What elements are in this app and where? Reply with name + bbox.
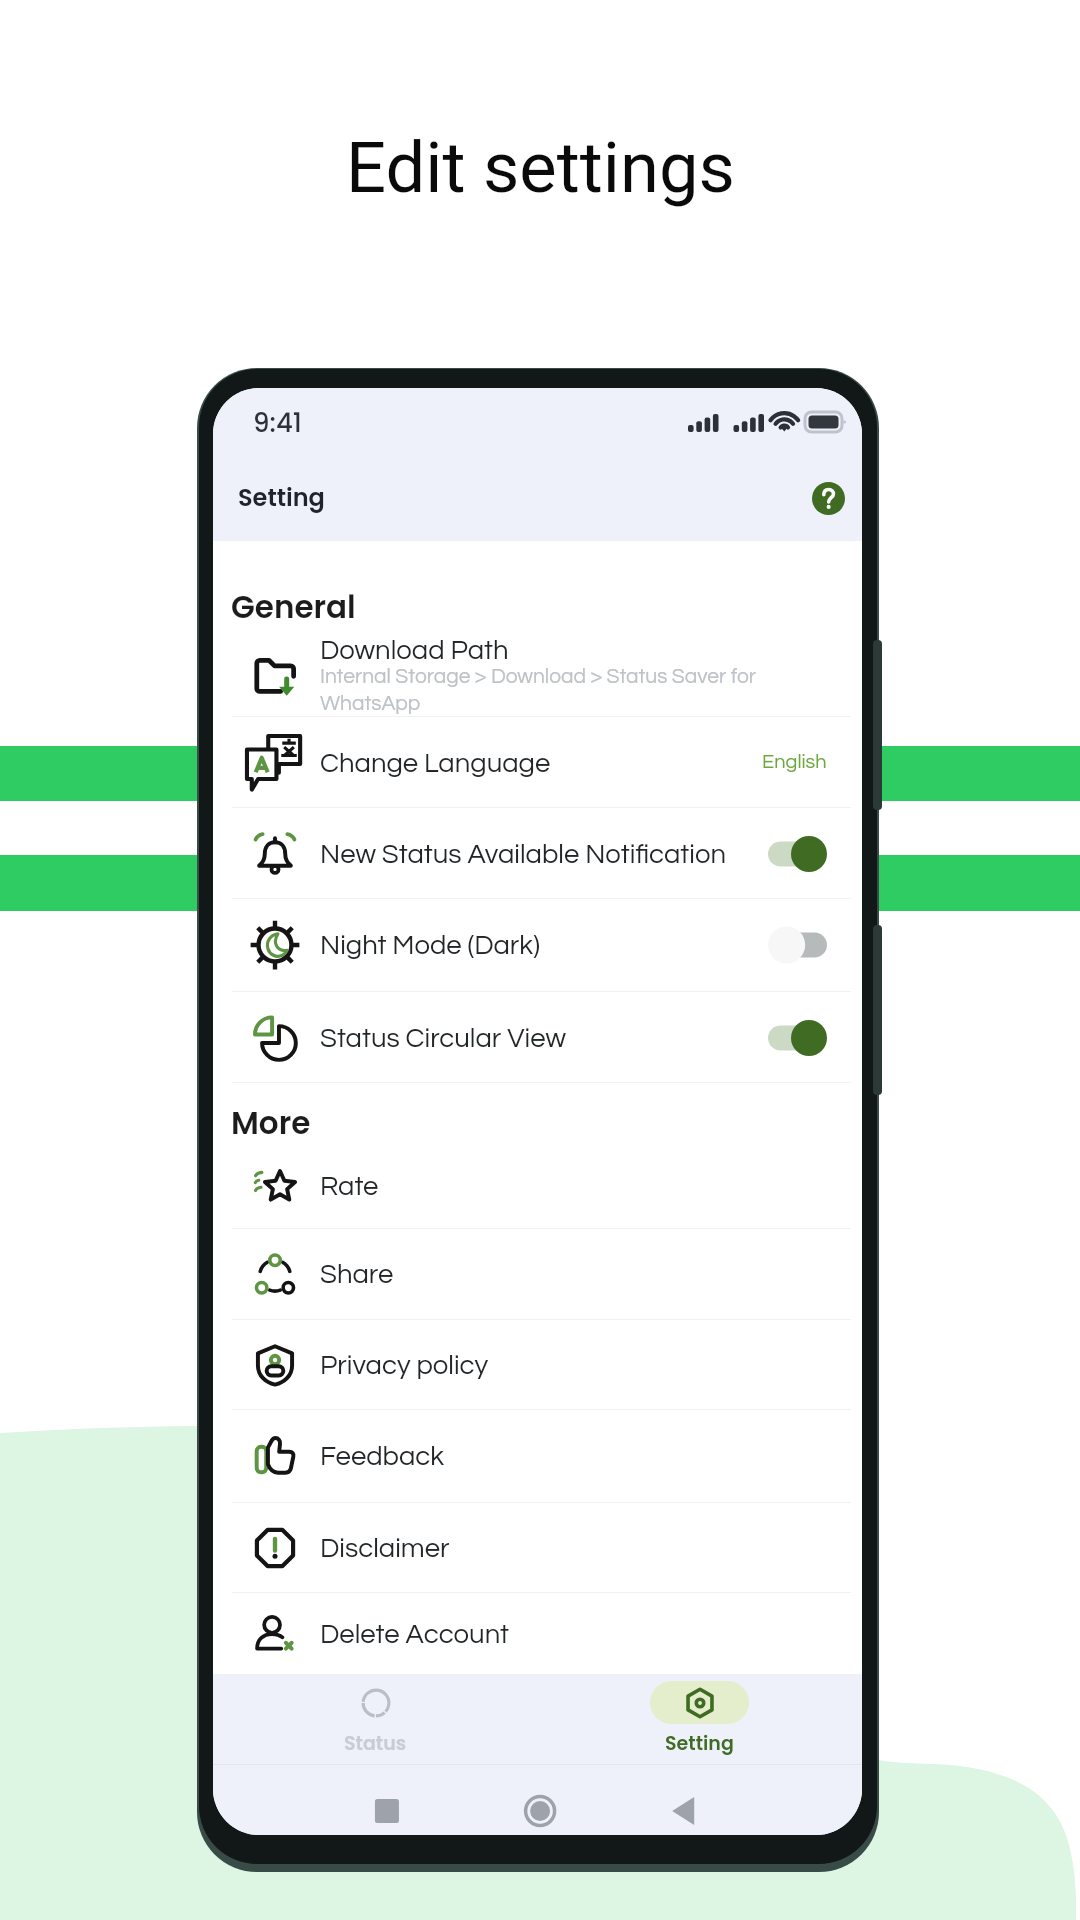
button[interactable]: Status [213, 1674, 537, 1764]
staticText: English [762, 752, 827, 773]
staticText: Edit settings [346, 127, 735, 210]
staticText: Feedback [320, 1442, 445, 1470]
staticText: Download Path [320, 636, 509, 664]
staticText: Change Language [320, 749, 551, 777]
button[interactable]: New Status Available Notification [213, 808, 862, 899]
staticText: Share [320, 1260, 394, 1288]
staticText: Status Circular View [320, 1024, 566, 1052]
staticText: Setting [665, 1730, 734, 1757]
staticText: Disclaimer [320, 1534, 450, 1562]
staticText: More [231, 1101, 311, 1144]
button[interactable]: Rate [213, 1143, 862, 1228]
button[interactable]: Night Mode (Dark) [213, 899, 862, 991]
button[interactable]: Download Path [213, 634, 862, 716]
button[interactable]: Help [812, 482, 845, 515]
button[interactable]: Privacy policy [213, 1320, 862, 1410]
button[interactable]: Disclaimer [213, 1503, 862, 1592]
staticText: Internal Storage > Download > Status Sav… [320, 666, 780, 715]
button[interactable]: Change Language [213, 717, 862, 808]
staticText: Night Mode (Dark) [320, 931, 540, 959]
button[interactable]: Delete Account [213, 1593, 862, 1674]
staticText: Setting [238, 481, 325, 515]
staticText: Rate [320, 1172, 379, 1200]
staticText: New Status Available Notification [320, 840, 727, 868]
button[interactable]: Status Circular View [213, 992, 862, 1083]
button[interactable]: Feedback [213, 1410, 862, 1502]
staticText: General [231, 585, 356, 628]
button[interactable]: Share [213, 1229, 862, 1319]
staticText: Privacy policy [320, 1351, 489, 1379]
staticText: 9:41 [253, 405, 302, 435]
staticText: Status [344, 1730, 407, 1757]
staticText: Delete Account [320, 1620, 509, 1648]
button[interactable]: Setting [537, 1674, 862, 1764]
